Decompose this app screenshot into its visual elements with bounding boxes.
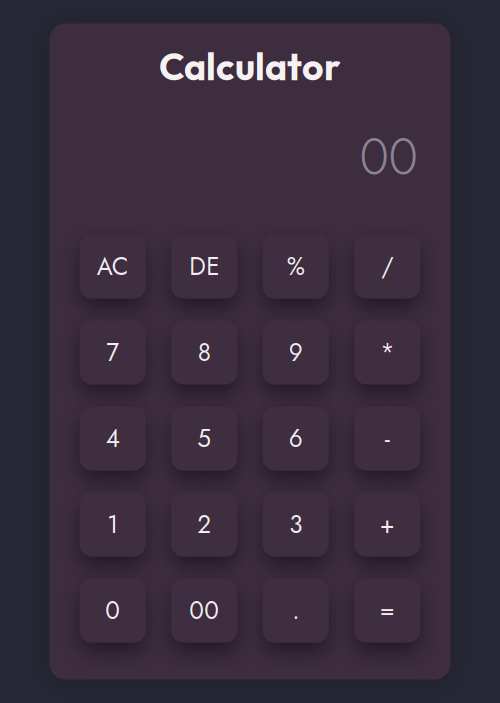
staticText: % (287, 249, 305, 284)
staticText: . (292, 593, 299, 628)
staticText: Calculator (159, 43, 341, 90)
staticText: * (380, 335, 394, 370)
staticText: 4 (106, 421, 120, 456)
staticText: + (380, 507, 395, 542)
button[interactable]: 00 (171, 578, 237, 642)
button[interactable]: 0 (80, 578, 146, 642)
staticText: 00 (359, 120, 417, 193)
staticText: AC (97, 249, 129, 284)
button[interactable]: AC (80, 234, 146, 298)
button[interactable]: * (354, 320, 420, 384)
button[interactable]: 6 (263, 406, 329, 470)
button[interactable]: 4 (80, 406, 146, 470)
button[interactable]: 8 (171, 320, 237, 384)
staticText: 5 (197, 421, 211, 456)
button[interactable]: + (354, 492, 420, 556)
button[interactable]: = (354, 578, 420, 642)
button[interactable]: DE (171, 234, 237, 298)
button[interactable]: 9 (263, 320, 329, 384)
staticText: 00 (189, 593, 219, 628)
button[interactable]: . (263, 578, 329, 642)
button[interactable]: - (354, 406, 420, 470)
button[interactable]: % (263, 234, 329, 298)
staticText: 8 (198, 335, 211, 370)
staticText: - (385, 421, 390, 456)
staticText: 1 (107, 507, 118, 542)
button[interactable]: 3 (263, 492, 329, 556)
staticText: 9 (289, 335, 303, 370)
staticText: 2 (197, 507, 211, 542)
button[interactable]: 1 (80, 492, 146, 556)
staticText: 3 (289, 507, 302, 542)
button[interactable]: 2 (171, 492, 237, 556)
staticText: DE (189, 249, 219, 284)
staticText: / (381, 249, 393, 284)
staticText: 7 (106, 335, 119, 370)
button[interactable]: 5 (171, 406, 237, 470)
staticText: 6 (289, 421, 303, 456)
button[interactable]: / (354, 234, 420, 298)
staticText: = (380, 593, 395, 628)
button[interactable]: 7 (80, 320, 146, 384)
staticText: 0 (105, 593, 120, 628)
